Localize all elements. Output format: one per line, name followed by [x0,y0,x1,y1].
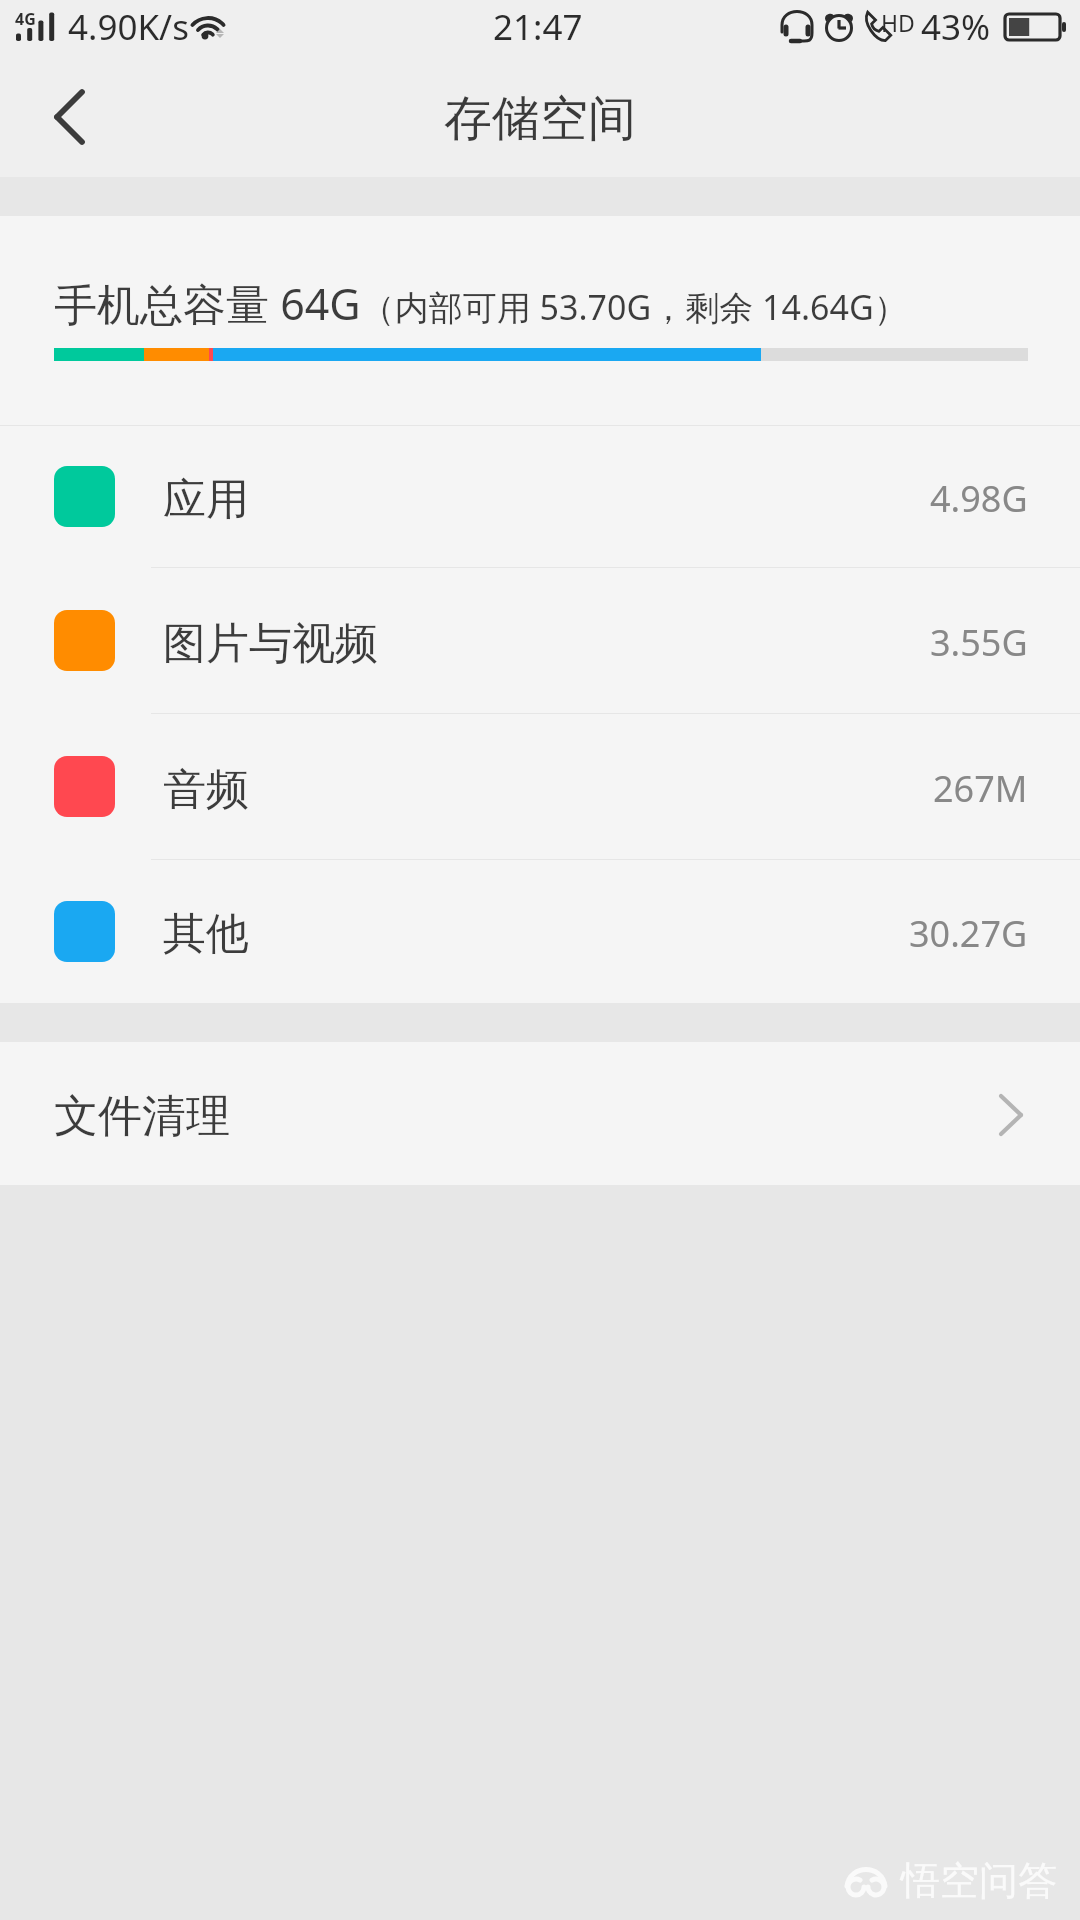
staticText: 悟空问答 [901,1856,1057,1905]
staticText: 手机总容量 64G（内部可用 53.70G，剩余 14.64G） [54,274,908,333]
staticText: 其他 [163,907,249,961]
staticText: 43% [921,3,991,51]
staticText: 应用 [163,473,249,527]
staticText: 30.27G [909,909,1028,958]
button[interactable]: 文件清理 [0,1042,1080,1185]
staticText: 音频 [163,763,249,817]
staticText: 3.55G [930,618,1028,667]
staticText: 4G [15,8,36,30]
button[interactable]: Back [0,56,121,177]
staticText: 21:47 [493,3,583,51]
button[interactable]: 应用 [0,426,1080,567]
staticText: 4.90K/s [68,3,189,51]
staticText: 图片与视频 [163,617,378,671]
button[interactable]: 图片与视频 [0,568,1080,713]
staticText: 267M [933,764,1028,813]
staticText: HD [881,7,915,38]
button[interactable]: 其他 [0,860,1080,1002]
button[interactable]: 音频 [0,714,1080,859]
staticText: 存储空间 [444,89,636,149]
staticText: 4.98G [930,474,1028,523]
staticText: 文件清理 [54,1089,230,1144]
other: Open file cleanup [975,1079,1045,1149]
